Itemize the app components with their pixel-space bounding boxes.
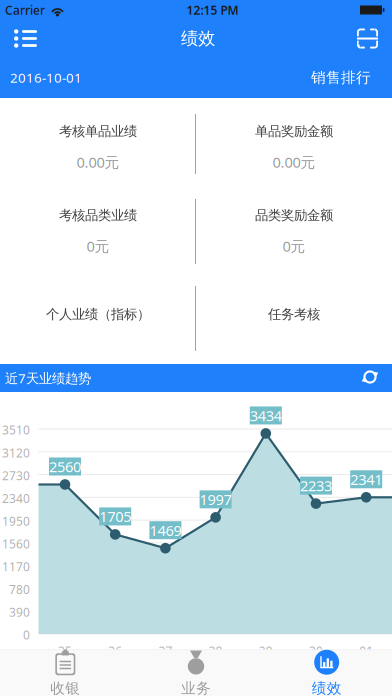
staticText: 28 — [209, 643, 223, 659]
staticText: 3120 — [2, 445, 30, 461]
staticText: 0 — [23, 627, 30, 643]
staticText: 1705 — [99, 507, 131, 526]
button[interactable]: 收银 — [0, 643, 131, 696]
button[interactable]: Refresh — [354, 364, 392, 392]
button[interactable]: 单品奖励金额 — [196, 98, 392, 190]
staticText: 0.00元 — [272, 152, 315, 172]
staticText: 1170 — [2, 559, 30, 575]
staticText: 0元 — [282, 236, 305, 256]
staticText: 27 — [158, 643, 172, 659]
staticText: 26 — [108, 643, 122, 659]
staticText: 390 — [9, 604, 30, 620]
staticText: 25 — [58, 643, 72, 659]
staticText: 1469 — [149, 520, 181, 540]
button[interactable]: 个人业绩（指标） — [0, 273, 196, 364]
staticText: 任务考核 — [268, 306, 320, 322]
staticText: 考核单品业绩 — [59, 123, 137, 139]
staticText: Carrier — [5, 2, 45, 18]
staticText: 2340 — [2, 490, 30, 506]
staticText: 1997 — [200, 490, 232, 509]
staticText: 0元 — [86, 236, 109, 256]
staticText: 销售排行 — [311, 68, 371, 86]
staticText: 收银 — [50, 679, 80, 696]
staticText: 2233 — [300, 476, 332, 495]
staticText: 2341 — [350, 469, 382, 489]
staticText: 01 — [359, 643, 373, 659]
button[interactable]: 业务 — [131, 643, 261, 696]
button[interactable]: Menu — [0, 16, 51, 60]
button[interactable]: 考核品类业绩 — [0, 190, 196, 273]
button[interactable]: 品类奖励金额 — [196, 190, 392, 273]
button[interactable]: 任务考核 — [196, 273, 392, 364]
button[interactable]: 销售排行 — [311, 60, 392, 94]
staticText: 考核品类业绩 — [59, 207, 137, 223]
staticText: 3434 — [250, 406, 282, 425]
staticText: 3510 — [2, 422, 30, 438]
staticText: 2016-10-01 — [10, 69, 82, 86]
button[interactable]: 考核单品业绩 — [0, 98, 196, 190]
staticText: 近7天业绩趋势 — [5, 369, 91, 387]
button[interactable]: 绩效 — [261, 643, 392, 696]
staticText: 2560 — [49, 457, 81, 476]
staticText: 29 — [259, 643, 273, 659]
button[interactable]: 2016-10-01 — [0, 61, 82, 94]
staticText: 业务 — [181, 679, 211, 696]
staticText: 12:15 PM — [186, 2, 238, 18]
staticText: 个人业绩（指标） — [46, 306, 150, 322]
staticText: 品类奖励金额 — [255, 207, 333, 223]
staticText: 绩效 — [181, 28, 215, 49]
staticText: 780 — [9, 581, 30, 597]
staticText: 1560 — [2, 536, 30, 552]
staticText: 0.00元 — [76, 152, 119, 172]
staticText: 1950 — [2, 513, 30, 529]
staticText: 绩效 — [312, 679, 342, 696]
staticText: 30 — [309, 643, 323, 659]
staticText: 单品奖励金额 — [255, 123, 333, 139]
staticText: 2730 — [2, 468, 30, 483]
button[interactable]: Scan — [345, 18, 392, 58]
